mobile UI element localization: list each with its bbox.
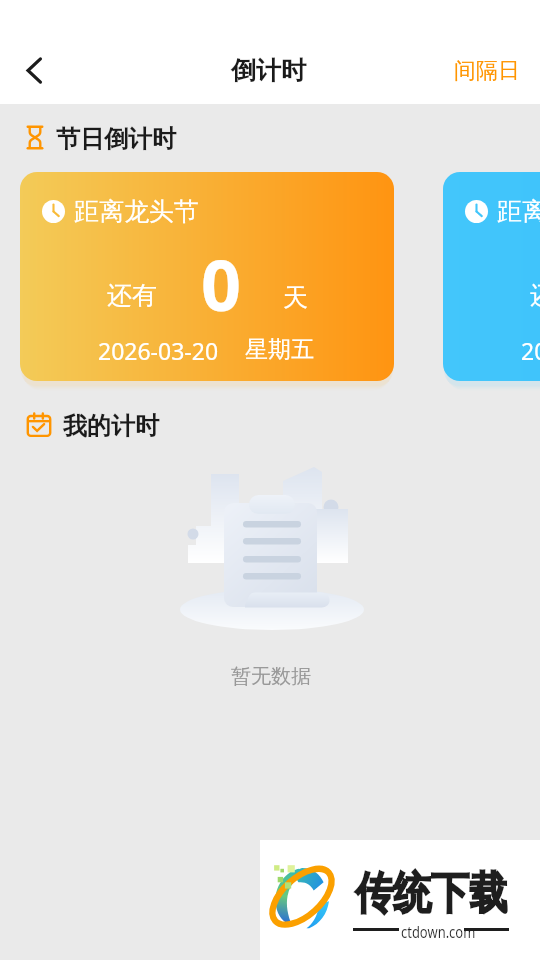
staticText: 传统下载: [355, 866, 507, 921]
button[interactable]: 间隔日: [442, 49, 532, 93]
staticText: 星期五: [245, 335, 314, 364]
button[interactable]: 距离清明节: [443, 172, 540, 381]
staticText: 间隔日: [454, 57, 520, 85]
staticText: 距离清明节: [497, 196, 540, 227]
button[interactable]: Back: [9, 45, 59, 95]
staticText: 倒计时: [231, 55, 306, 86]
staticText: 暂无数据: [231, 664, 311, 689]
staticText: ctdown.com: [401, 921, 475, 943]
staticText: 距离龙头节: [74, 196, 199, 227]
staticText: 我的计时: [63, 411, 159, 441]
staticText: 节日倒计时: [56, 124, 176, 154]
staticText: 天: [283, 282, 308, 313]
staticText: 2026-03-20: [98, 335, 219, 366]
button[interactable]: 距离龙头节: [20, 172, 394, 381]
staticText: 0: [201, 236, 242, 331]
staticText: 还有: [107, 280, 157, 311]
staticText: 2026-04-05: [521, 335, 540, 366]
staticText: 还有: [530, 280, 540, 311]
